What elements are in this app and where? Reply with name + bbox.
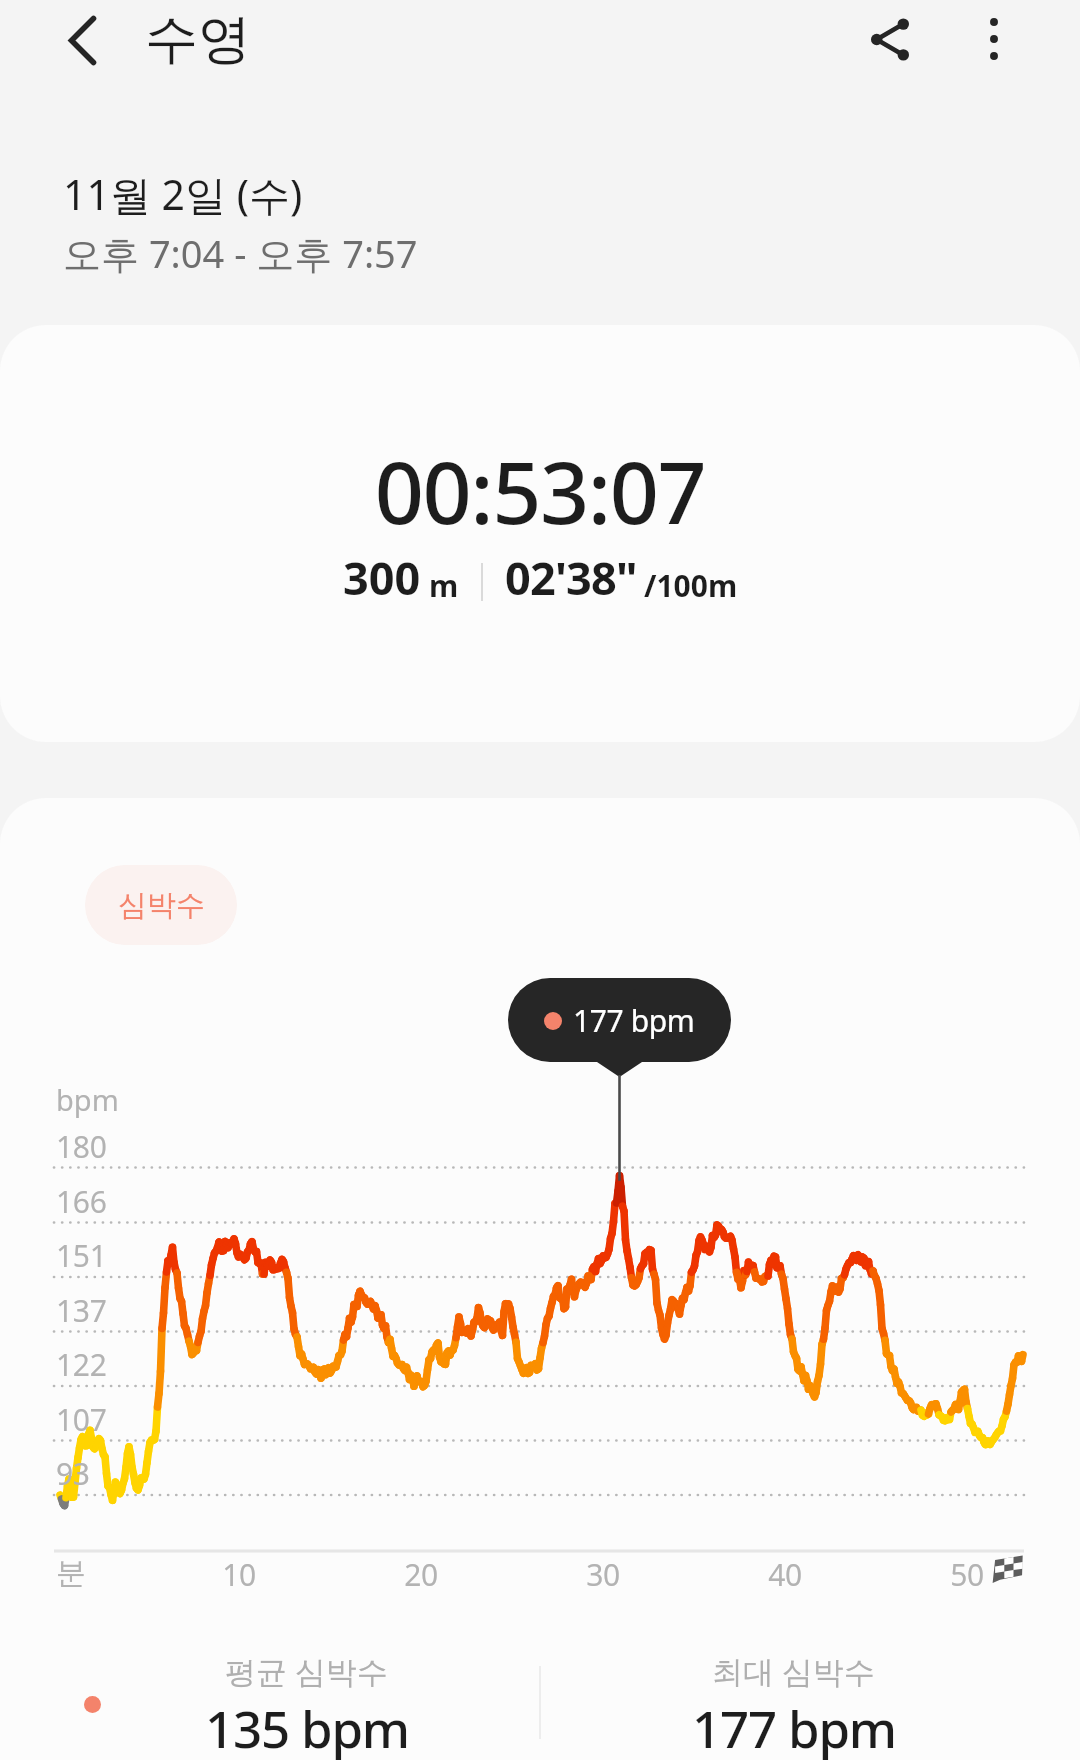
- staticText: 50: [907, 1554, 1027, 1595]
- staticText: 177 bpm: [573, 1000, 695, 1041]
- button[interactable]: 평균 심박수: [107, 1650, 507, 1760]
- staticText: 최대 심박수: [712, 1650, 876, 1692]
- staticText: 40: [725, 1554, 845, 1595]
- staticText: 151: [56, 1235, 107, 1276]
- staticText: 30: [543, 1554, 663, 1595]
- button[interactable]: 최대 심박수: [594, 1650, 994, 1760]
- staticText: /100m: [644, 565, 738, 606]
- staticText: 122: [56, 1344, 107, 1385]
- staticText: 수영: [145, 6, 251, 73]
- staticText: 93: [56, 1453, 90, 1494]
- staticText: m: [429, 565, 459, 606]
- staticText: 10: [179, 1554, 299, 1595]
- button[interactable]: 00:53:07: [0, 325, 1080, 742]
- staticText: 11월 2일 (수): [63, 166, 303, 222]
- button[interactable]: More options: [949, 0, 1039, 84]
- button[interactable]: Share: [845, 0, 935, 84]
- staticText: 오후 7:04 - 오후 7:57: [63, 227, 418, 279]
- staticText: 02'38": [505, 547, 637, 608]
- staticText: 분: [56, 1554, 86, 1592]
- button[interactable]: 177 bpm: [508, 978, 731, 1062]
- staticText: 177 bpm: [692, 1693, 896, 1760]
- staticText: 300: [343, 547, 421, 608]
- staticText: 00:53:07: [0, 432, 1080, 549]
- staticText: 135 bpm: [205, 1693, 409, 1760]
- staticText: 137: [56, 1290, 107, 1331]
- staticText: 107: [56, 1399, 107, 1440]
- staticText: 166: [56, 1181, 107, 1222]
- staticText: 180: [56, 1126, 107, 1167]
- staticText: 평균 심박수: [225, 1650, 389, 1692]
- button[interactable]: 심박수: [85, 865, 237, 945]
- staticText: 심박수: [118, 887, 205, 924]
- button[interactable]: Back: [37, 0, 127, 85]
- staticText: bpm: [56, 1080, 119, 1119]
- staticText: 20: [361, 1554, 481, 1595]
